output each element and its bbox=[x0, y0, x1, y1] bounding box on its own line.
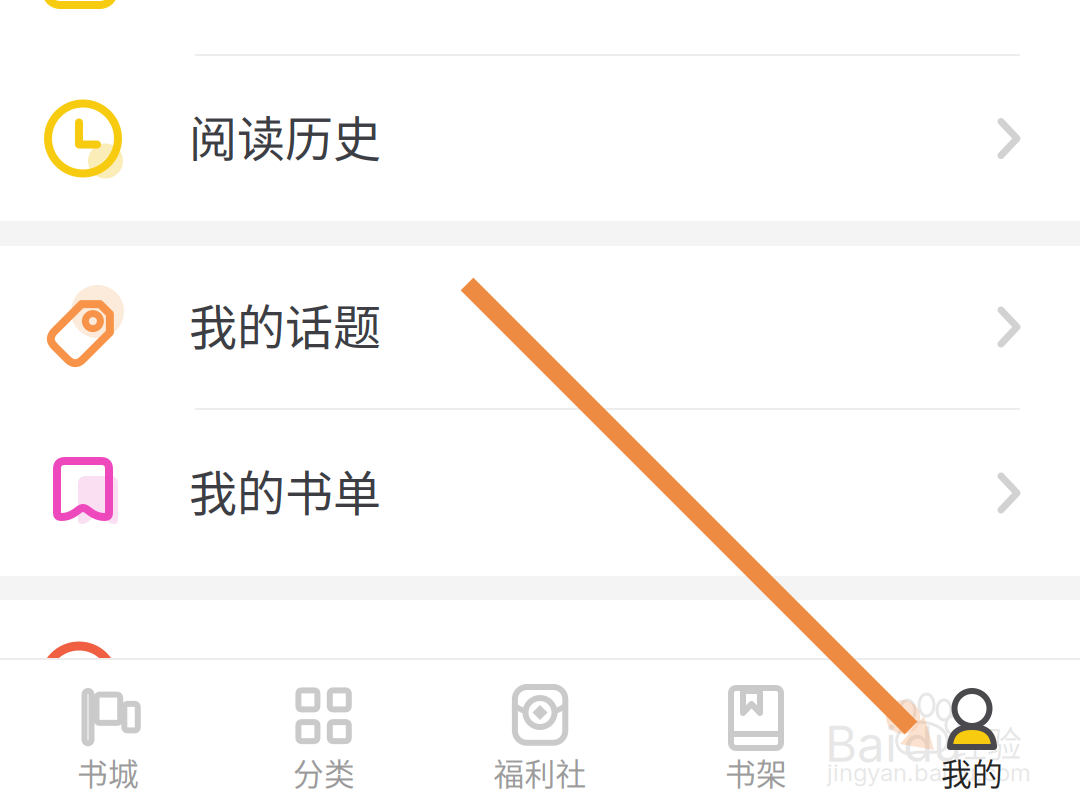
button[interactable]: 福利社 bbox=[432, 658, 648, 809]
staticText: 我的书单 bbox=[189, 455, 381, 525]
staticText: jingyan.baidu.com bbox=[827, 758, 1031, 787]
staticText: Bai bbox=[825, 714, 897, 774]
button[interactable]: 我的话题 bbox=[0, 246, 1080, 410]
button[interactable]: 我的 bbox=[864, 658, 1080, 809]
staticText: 阅读历史 bbox=[189, 101, 381, 170]
staticText: 我的 bbox=[941, 750, 1003, 794]
button[interactable]: 阅读历史 bbox=[0, 56, 1080, 221]
staticText: 书城 bbox=[77, 750, 139, 794]
button[interactable]: 书架 bbox=[648, 658, 864, 809]
button[interactable]: 我的书单 bbox=[0, 410, 1080, 576]
staticText: 书架 bbox=[725, 750, 787, 794]
button[interactable]: 书城 bbox=[0, 658, 216, 809]
staticText: 经验 bbox=[952, 717, 1022, 767]
staticText: du bbox=[903, 714, 962, 774]
button[interactable]: 分类 bbox=[216, 658, 432, 809]
staticText: 福利社 bbox=[493, 750, 586, 794]
staticText: 分类 bbox=[293, 750, 355, 794]
staticText: 我的话题 bbox=[189, 289, 381, 359]
